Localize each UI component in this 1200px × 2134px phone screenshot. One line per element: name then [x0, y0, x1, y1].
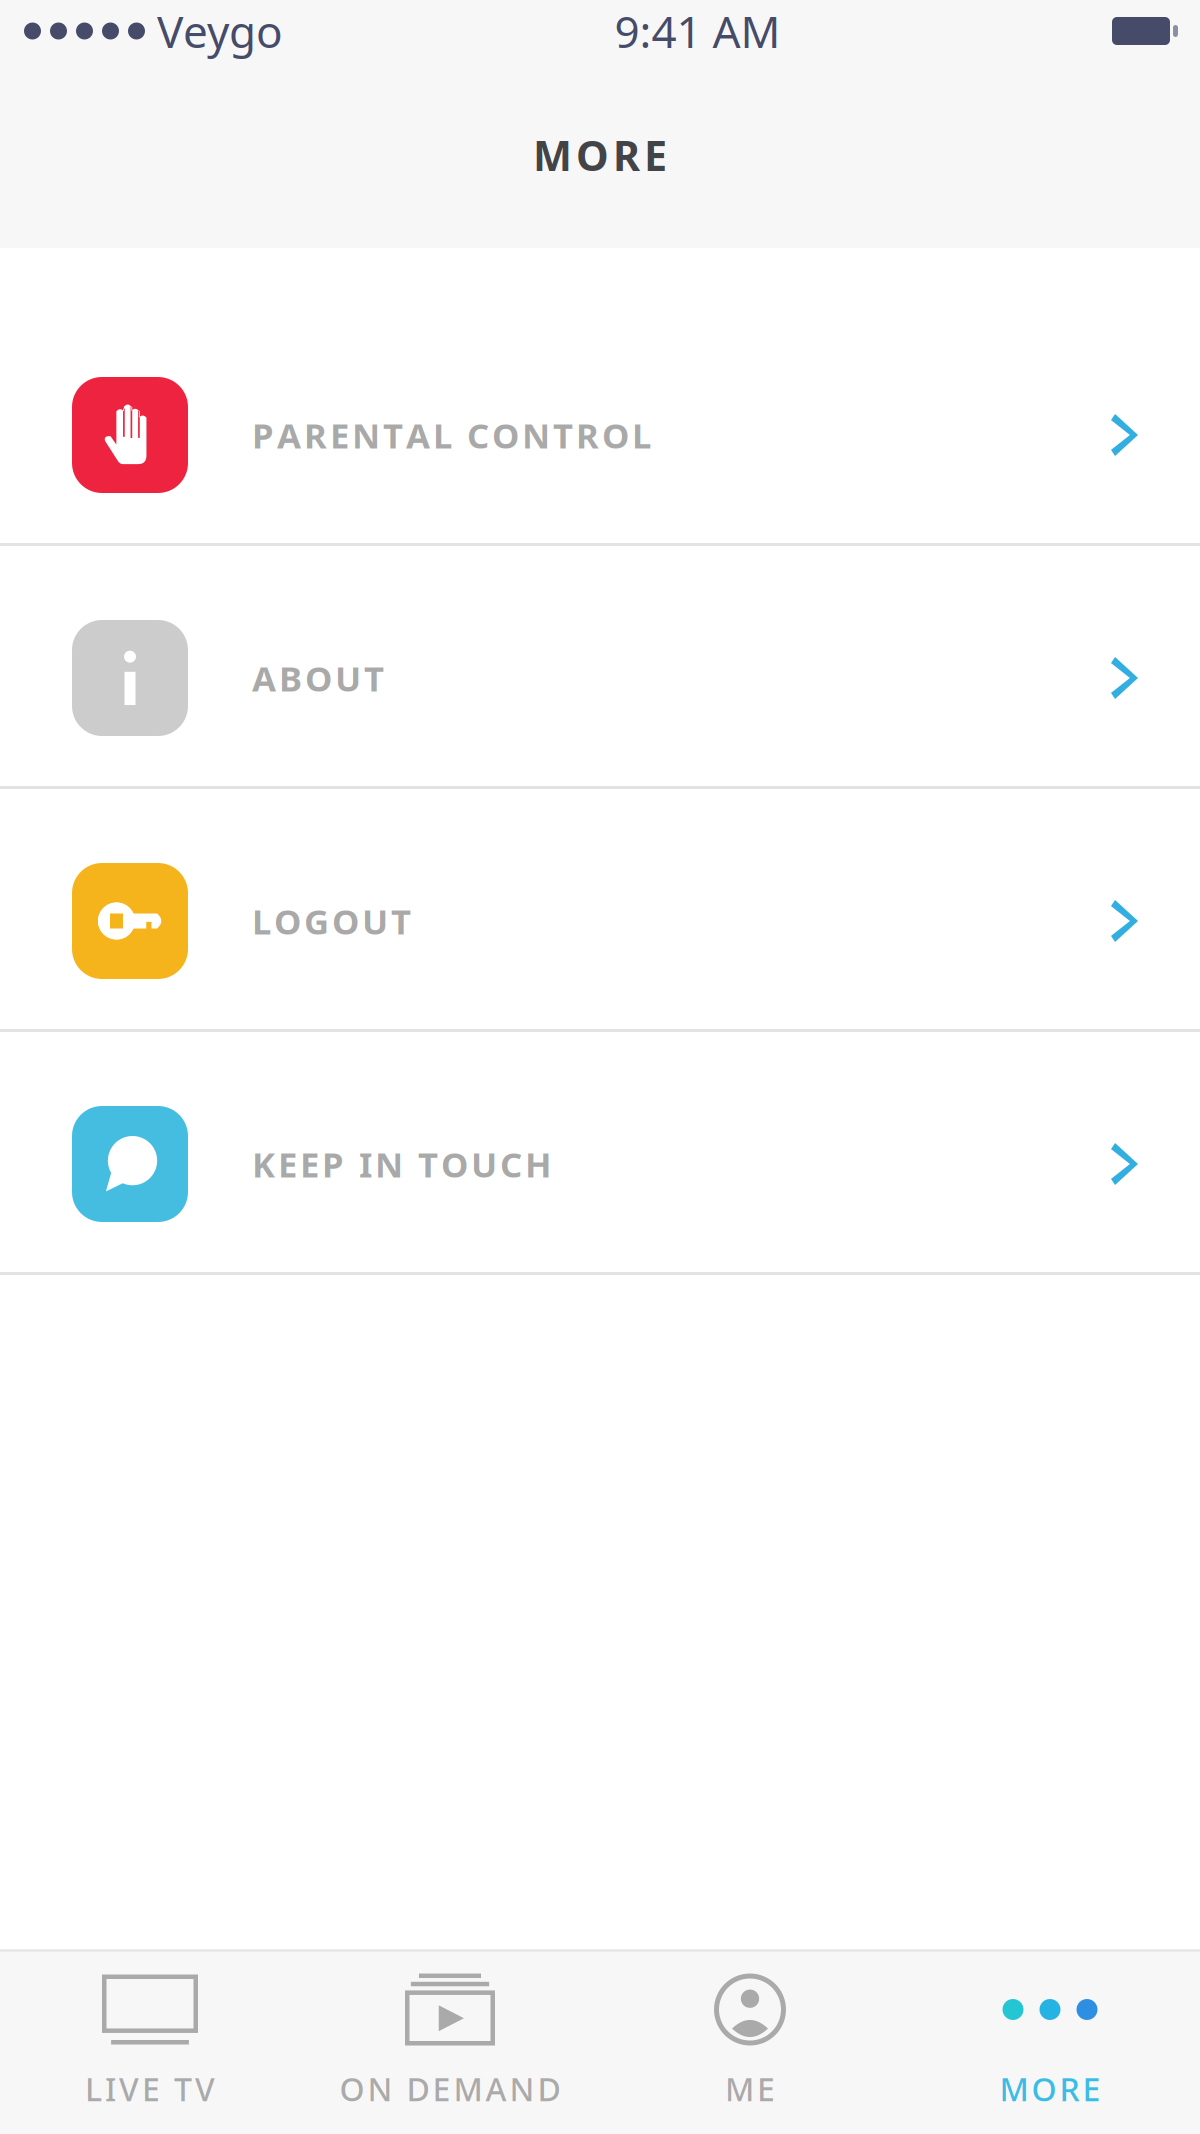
staticText: A B O U T — [252, 655, 384, 701]
button[interactable]: M O R E — [900, 1951, 1200, 2134]
staticText: K E E P I N T O U C H — [252, 1141, 552, 1187]
staticText: L O G O U T — [252, 898, 411, 944]
staticText: P A R E N T A L C O N T R O L — [252, 412, 651, 458]
staticText: 9:41 AM — [614, 2, 780, 60]
button[interactable]: A B O U T — [0, 546, 1200, 789]
staticText: L I V E T V — [85, 2067, 215, 2110]
button[interactable]: L O G O U T — [0, 789, 1200, 1032]
staticText: M O R E — [999, 2067, 1100, 2110]
staticText: M E — [725, 2067, 775, 2110]
button[interactable]: O N D E M A N D — [300, 1951, 600, 2134]
staticText: Veygo — [157, 2, 283, 60]
button[interactable]: K E E P I N T O U C H — [0, 1032, 1200, 1275]
button[interactable]: M E — [600, 1951, 900, 2134]
button[interactable]: P A R E N T A L C O N T R O L — [0, 303, 1200, 546]
button[interactable]: L I V E T V — [0, 1951, 300, 2134]
staticText: O N D E M A N D — [339, 2067, 560, 2110]
staticText: M O R E — [533, 128, 667, 182]
